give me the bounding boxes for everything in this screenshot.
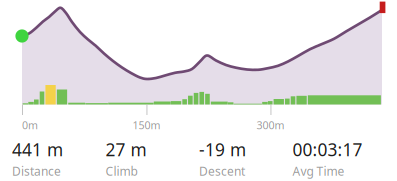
staticText: -19 m	[199, 138, 246, 161]
staticText: 300m	[256, 118, 284, 132]
staticText: Avg Time	[292, 163, 344, 179]
button[interactable]: 00:03:17	[292, 138, 386, 179]
staticText: 00:03:17	[292, 138, 362, 161]
button[interactable]: 27 m	[105, 138, 199, 179]
staticText: 0m	[22, 118, 38, 132]
staticText: Descent	[199, 163, 245, 179]
button[interactable]: -19 m	[199, 138, 292, 179]
button[interactable]: 441 m	[12, 138, 105, 179]
staticText: Climb	[105, 163, 137, 179]
staticText: 150m	[132, 118, 160, 132]
staticText: 441 m	[12, 138, 63, 161]
staticText: 27 m	[105, 138, 146, 161]
staticText: Distance	[12, 163, 61, 179]
